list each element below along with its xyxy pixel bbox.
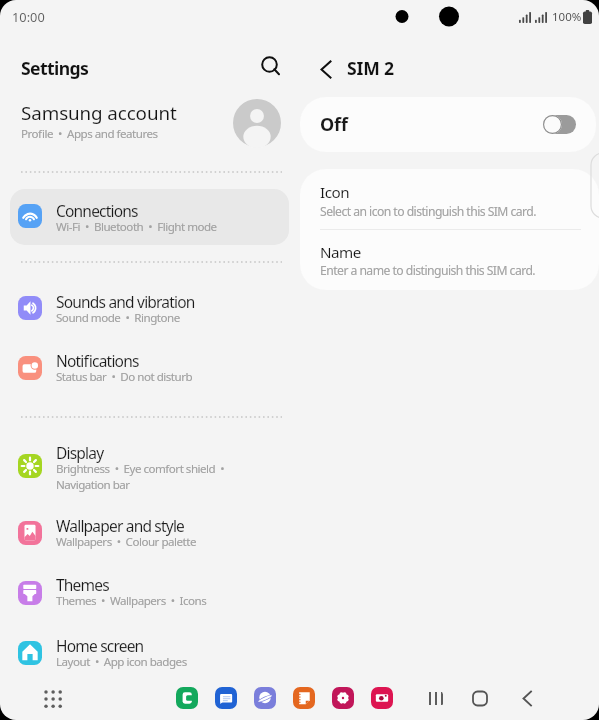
staticText: Wi-Fi • Bluetooth • Flight mode <box>56 219 217 235</box>
staticText: Connections <box>56 200 138 221</box>
button[interactable]: Recents <box>420 687 444 711</box>
button[interactable]: Home <box>468 687 492 711</box>
staticText: Settings <box>21 56 89 80</box>
button[interactable]: Notes <box>289 683 319 713</box>
staticText: Layout • App icon badges <box>56 654 187 670</box>
button[interactable]: Back <box>306 49 346 89</box>
staticText: Navigation bar <box>56 477 130 493</box>
button[interactable] <box>0 284 299 331</box>
staticText: 100% <box>552 9 582 25</box>
button[interactable]: Apps <box>38 684 68 714</box>
staticText: Status bar • Do not disturb <box>56 369 193 385</box>
button[interactable] <box>300 169 599 230</box>
staticText: Brightness • Eye comfort shield • <box>56 461 225 477</box>
button[interactable]: Camera <box>367 683 397 713</box>
button[interactable] <box>0 193 299 240</box>
button[interactable]: Search <box>250 46 290 86</box>
button[interactable] <box>0 343 299 390</box>
button[interactable] <box>300 230 599 290</box>
staticText: SIM 2 <box>347 56 394 80</box>
button[interactable]: Gallery <box>328 683 358 713</box>
staticText: Select an icon to distinguish this SIM c… <box>320 203 536 220</box>
staticText: Home screen <box>56 635 144 656</box>
staticText: Notifications <box>56 350 139 371</box>
button[interactable] <box>0 92 299 154</box>
button[interactable]: Internet <box>250 683 280 713</box>
staticText: Name <box>320 242 361 263</box>
staticText: 10:00 <box>12 8 45 25</box>
button[interactable]: Phone <box>172 683 202 713</box>
staticText: Sound mode • Ringtone <box>56 310 180 326</box>
staticText: Display <box>56 442 104 463</box>
staticText: Wallpapers • Colour palette <box>56 534 196 550</box>
button[interactable]: Messages <box>211 683 241 713</box>
staticText: Wallpaper and style <box>56 515 185 536</box>
button[interactable] <box>0 435 299 499</box>
staticText: Off <box>320 112 348 137</box>
staticText: Profile • Apps and features <box>21 126 158 142</box>
button[interactable] <box>300 97 596 152</box>
button[interactable]: Back <box>515 687 539 711</box>
staticText: Samsung account <box>21 100 177 126</box>
staticText: Themes <box>56 574 109 595</box>
staticText: Enter a name to distinguish this SIM car… <box>320 262 536 279</box>
staticText: Sounds and vibration <box>56 291 195 312</box>
staticText: Icon <box>320 182 350 203</box>
button[interactable] <box>0 567 299 614</box>
button[interactable] <box>0 628 299 675</box>
button[interactable] <box>0 508 299 555</box>
staticText: Themes • Wallpapers • Icons <box>56 593 207 609</box>
